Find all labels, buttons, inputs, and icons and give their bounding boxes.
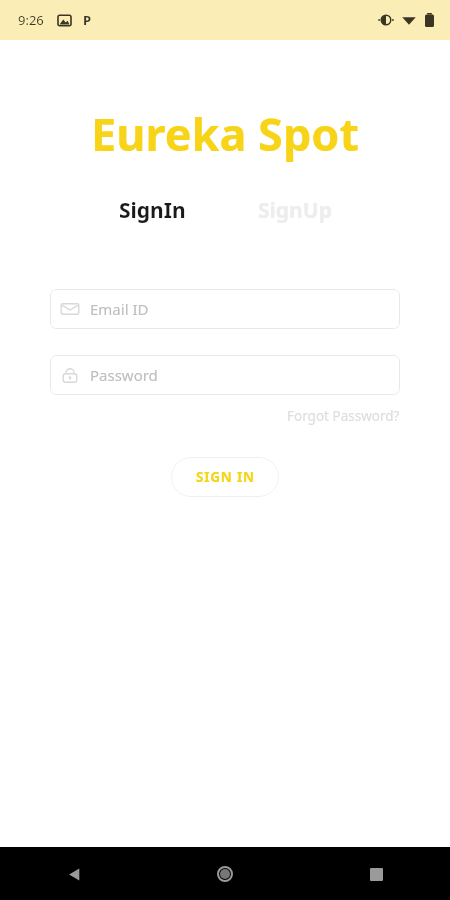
button[interactable]: SignIn — [113, 192, 192, 229]
staticText: Eureka Spot — [0, 103, 450, 164]
button[interactable]: Recent apps — [354, 852, 398, 896]
button[interactable]: Email ID — [50, 289, 400, 329]
button[interactable]: Password — [50, 355, 400, 395]
staticText: Email ID — [90, 299, 149, 319]
button[interactable]: Forgot Password? — [287, 405, 400, 427]
button[interactable]: SIGN IN — [171, 457, 279, 497]
staticText: SignUp — [258, 196, 332, 225]
button[interactable]: Back — [52, 852, 96, 896]
staticText: SIGN IN — [196, 468, 255, 486]
staticText: Password — [90, 365, 158, 385]
staticText: 9:26 — [18, 11, 44, 29]
staticText: Forgot Password? — [287, 407, 400, 425]
button[interactable]: Home — [203, 852, 247, 896]
button[interactable]: SignUp — [252, 192, 338, 229]
staticText: SignIn — [119, 196, 186, 225]
staticText: P — [83, 11, 92, 29]
